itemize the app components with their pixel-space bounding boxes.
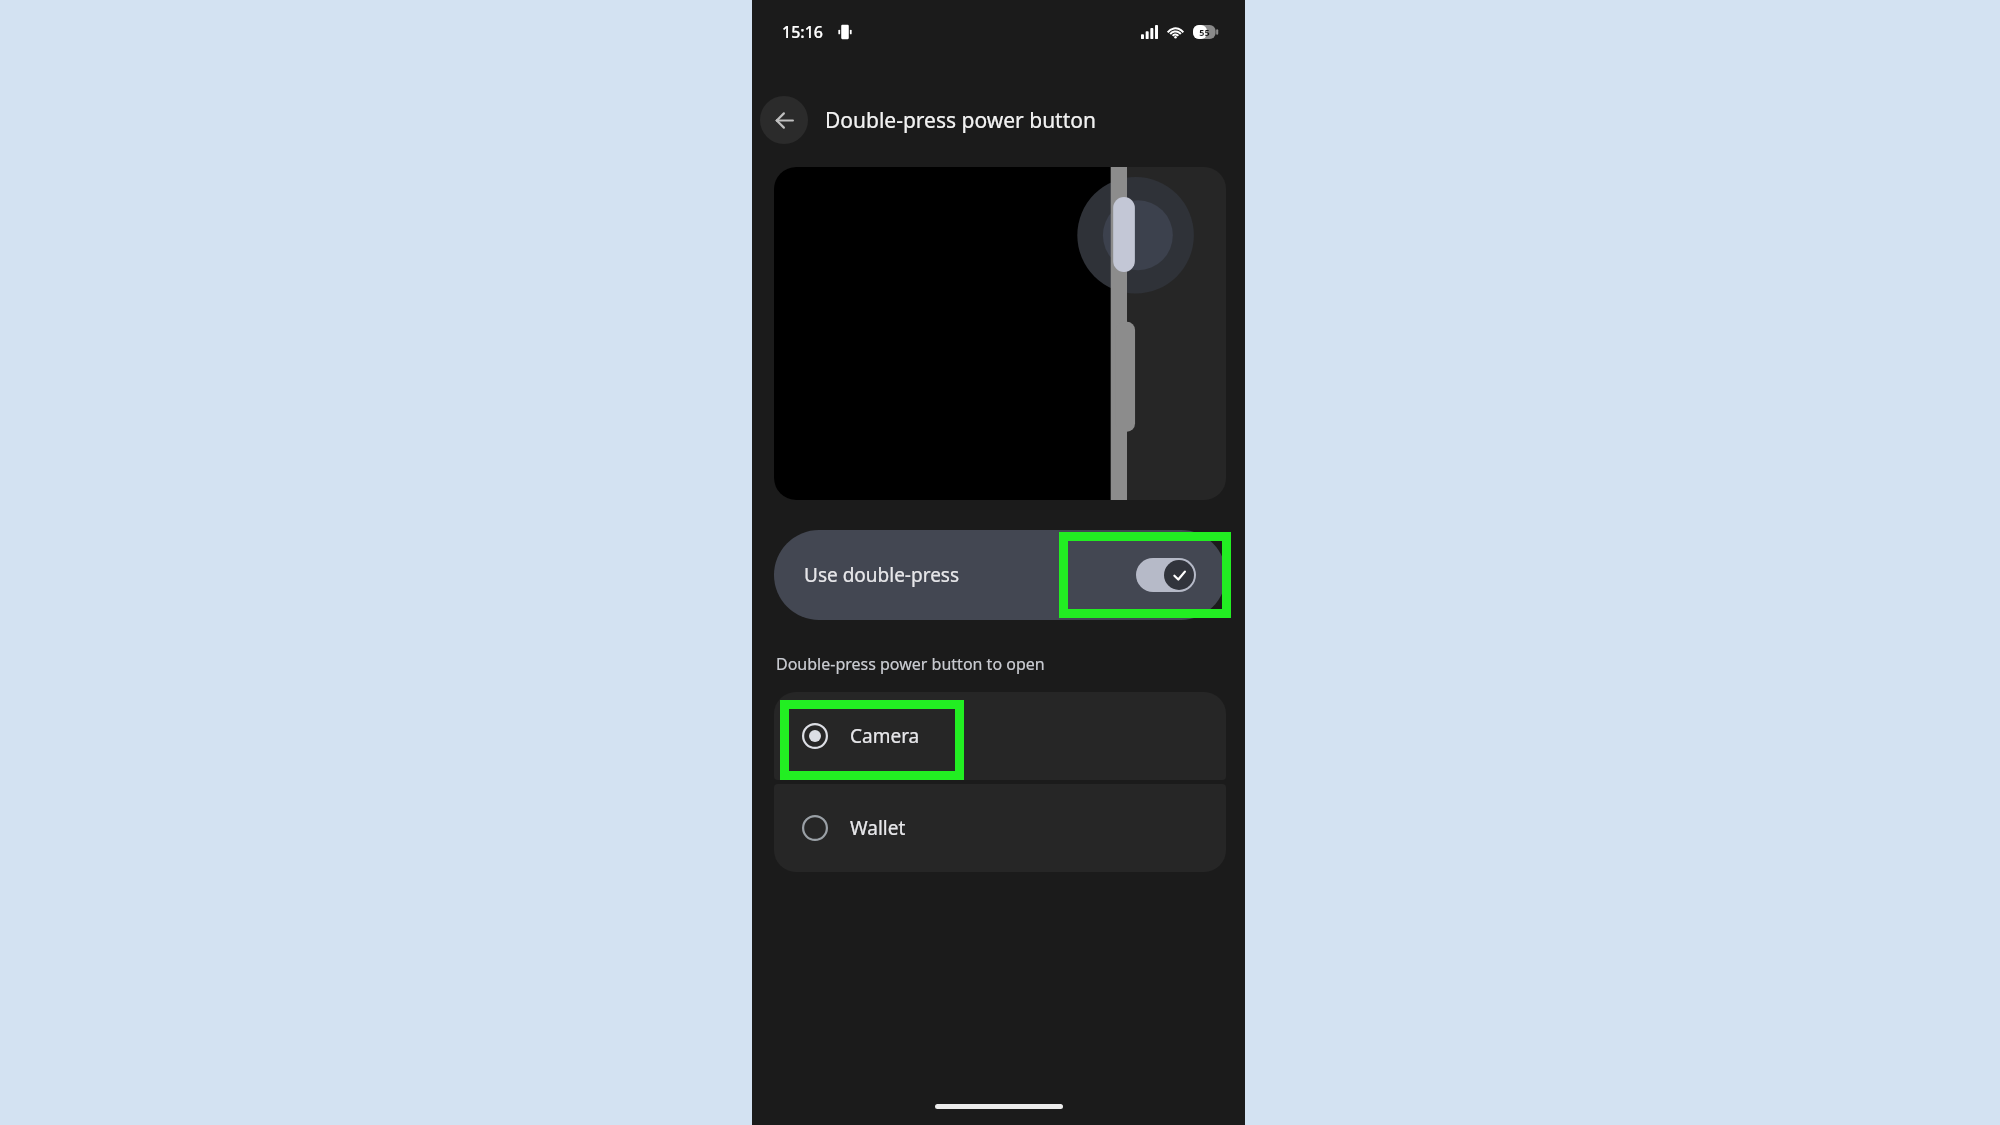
staticText: Wallet bbox=[850, 815, 906, 841]
staticText: 55 bbox=[1199, 26, 1210, 38]
button[interactable]: Use double-press bbox=[774, 530, 1226, 620]
button[interactable]: Use double-press toggle bbox=[1136, 558, 1196, 592]
staticText: Use double-press bbox=[804, 562, 960, 588]
button[interactable]: Wallet bbox=[774, 784, 1226, 872]
button[interactable]: Back bbox=[760, 96, 808, 144]
button[interactable]: Camera bbox=[774, 692, 1226, 780]
staticText: 15:16 bbox=[782, 21, 823, 43]
staticText: Double-press power button bbox=[825, 106, 1096, 135]
staticText: Camera bbox=[850, 723, 920, 749]
staticText: Double-press power button to open bbox=[776, 653, 1045, 675]
